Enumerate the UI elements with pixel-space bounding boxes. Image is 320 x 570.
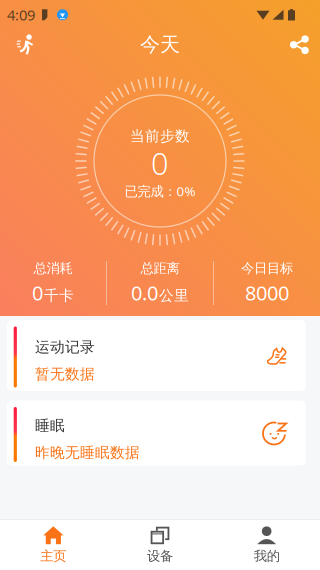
staticText: 公里 bbox=[159, 287, 189, 305]
staticText: 千卡 bbox=[44, 287, 74, 305]
button[interactable]: Share bbox=[283, 22, 315, 67]
button[interactable]: 我的 bbox=[213, 518, 320, 570]
staticText: 运动记录 bbox=[35, 338, 95, 356]
staticText: 4:09 bbox=[7, 5, 35, 24]
staticText: 我的 bbox=[254, 548, 280, 564]
button[interactable]: Activity bbox=[8, 22, 42, 67]
staticText: 设备 bbox=[147, 548, 173, 564]
staticText: 0.0 bbox=[131, 279, 158, 306]
staticText: 8000 bbox=[245, 279, 289, 306]
staticText: 暂无数据 bbox=[35, 365, 95, 383]
staticText: 当前步数 bbox=[130, 127, 190, 145]
staticText: 0 bbox=[32, 279, 43, 306]
staticText: 总距离 bbox=[140, 260, 179, 276]
button[interactable]: 睡眠 bbox=[7, 400, 306, 465]
button[interactable]: 主页 bbox=[0, 518, 107, 570]
button[interactable]: 设备 bbox=[107, 518, 213, 570]
staticText: 总消耗 bbox=[33, 260, 72, 276]
button[interactable]: 运动记录 bbox=[7, 320, 306, 391]
staticText: 0 bbox=[151, 143, 169, 183]
staticText: 今日目标 bbox=[241, 260, 293, 276]
staticText: 已完成：0% bbox=[124, 182, 195, 200]
staticText: 主页 bbox=[40, 548, 66, 564]
staticText: 睡眠 bbox=[35, 416, 65, 434]
staticText: 昨晚无睡眠数据 bbox=[35, 443, 140, 461]
staticText: 今天 bbox=[140, 32, 180, 57]
